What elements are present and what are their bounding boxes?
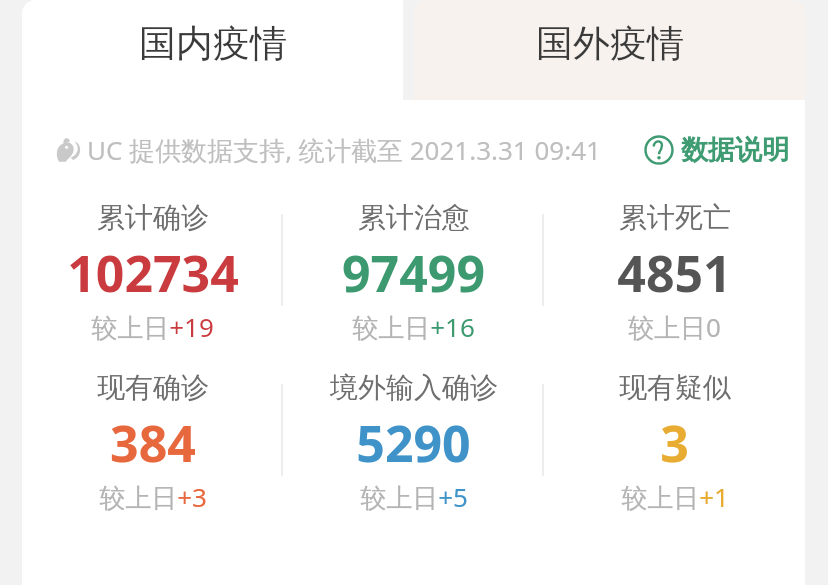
button[interactable]: 累计治愈 xyxy=(283,200,544,350)
button[interactable]: 现有疑似 xyxy=(544,370,805,520)
staticText: 数据说明 xyxy=(681,133,789,167)
button[interactable]: 国外疫情 xyxy=(414,0,805,100)
staticText: 5290 xyxy=(356,409,471,477)
staticText: 境外输入确诊 xyxy=(330,370,498,405)
staticText: 较上日+3 xyxy=(99,479,207,515)
staticText: 累计死亡 xyxy=(619,200,731,235)
staticText: 97499 xyxy=(342,239,485,307)
button[interactable]: 累计确诊 xyxy=(22,200,283,350)
staticText: 较上日0 xyxy=(628,309,721,345)
staticText: 较上日+5 xyxy=(360,479,468,515)
staticText: 现有疑似 xyxy=(619,370,731,405)
staticText: 384 xyxy=(110,409,196,477)
staticText: 102734 xyxy=(67,239,239,307)
button[interactable]: 数据说明 xyxy=(642,127,791,173)
staticText: 国内疫情 xyxy=(139,20,287,67)
staticText: 3 xyxy=(660,409,689,477)
staticText: 4851 xyxy=(617,239,732,307)
button[interactable]: 累计死亡 xyxy=(544,200,805,350)
button[interactable]: 现有确诊 xyxy=(22,370,283,520)
staticText: 较上日+19 xyxy=(91,309,214,345)
staticText: UC 提供数据支持, 统计截至 2021.3.31 09:41 xyxy=(87,132,601,168)
button[interactable]: 境外输入确诊 xyxy=(283,370,544,520)
staticText: 较上日+16 xyxy=(352,309,475,345)
staticText: 国外疫情 xyxy=(536,20,684,67)
staticText: 现有确诊 xyxy=(97,370,209,405)
staticText: 累计确诊 xyxy=(97,200,209,235)
button[interactable]: 国内疫情 xyxy=(22,0,403,100)
staticText: 较上日+1 xyxy=(621,479,729,515)
staticText: 累计治愈 xyxy=(358,200,470,235)
